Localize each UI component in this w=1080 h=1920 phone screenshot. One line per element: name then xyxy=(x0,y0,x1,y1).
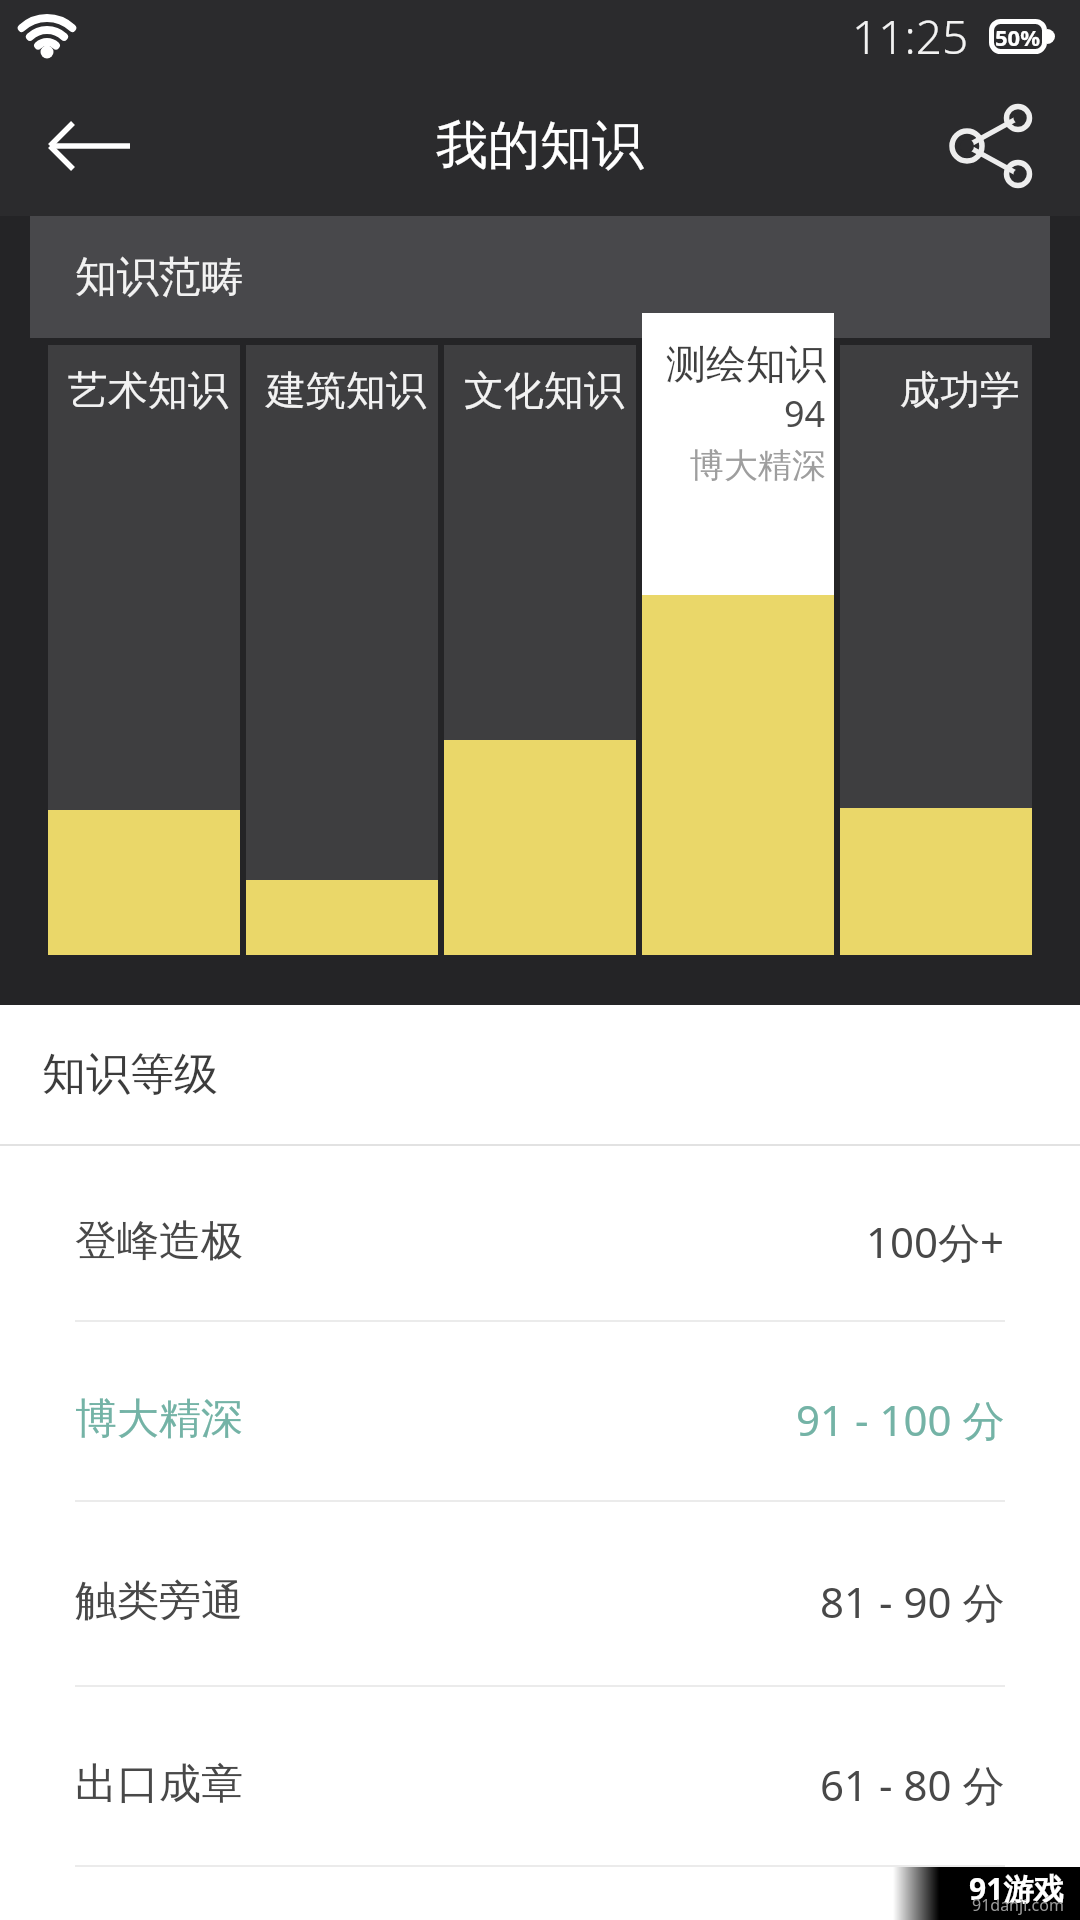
button[interactable]: 成功学 xyxy=(840,345,1032,955)
staticText: 出口成章 xyxy=(75,1758,243,1811)
staticText: 文化知识 xyxy=(464,365,624,415)
staticText: 50% xyxy=(995,22,1041,52)
staticText: 触类旁通 xyxy=(75,1575,243,1628)
button[interactable] xyxy=(24,91,134,201)
staticText: 成功学 xyxy=(900,365,1020,415)
staticText: 博大精深 xyxy=(690,444,826,487)
button[interactable]: 博大精深 xyxy=(0,1322,1080,1502)
staticText: 100分+ xyxy=(866,1213,1005,1270)
staticText: 91游戏 xyxy=(969,1868,1064,1909)
staticText: 91 - 100 分 xyxy=(796,1391,1005,1448)
staticText: 94 xyxy=(784,389,826,438)
button[interactable]: 测绘知识 xyxy=(642,313,834,955)
staticText: 登峰造极 xyxy=(75,1215,243,1268)
staticText: 艺术知识 xyxy=(68,365,228,415)
staticText: 11:25 xyxy=(852,5,969,68)
button[interactable]: 建筑知识 xyxy=(246,345,438,955)
staticText: 建筑知识 xyxy=(266,365,426,415)
staticText: 我的知识 xyxy=(436,113,644,179)
staticText: 测绘知识 xyxy=(666,339,826,389)
staticText: 91danji.com xyxy=(972,1894,1064,1916)
button[interactable]: 文化知识 xyxy=(444,345,636,955)
button[interactable] xyxy=(954,101,1044,191)
staticText: 知识范畴 xyxy=(75,251,243,304)
staticText: 81 - 90 分 xyxy=(820,1573,1005,1630)
button[interactable]: 触类旁通 xyxy=(0,1502,1080,1687)
button[interactable]: 登峰造极 xyxy=(0,1146,1080,1322)
button[interactable]: 艺术知识 xyxy=(48,345,240,955)
staticText: 知识等级 xyxy=(42,1047,218,1102)
staticText: 61 - 80 分 xyxy=(820,1756,1005,1813)
staticText: 博大精深 xyxy=(75,1393,243,1446)
button[interactable]: 出口成章 xyxy=(0,1687,1080,1867)
